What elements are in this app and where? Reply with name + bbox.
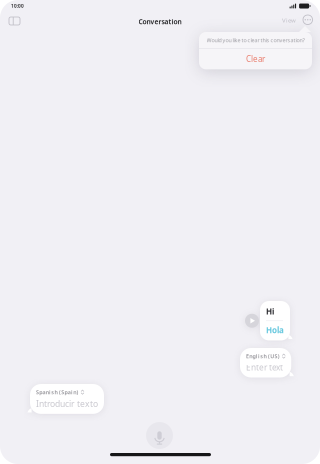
staticText: English (US) bbox=[246, 352, 280, 360]
staticText: Clear bbox=[246, 53, 265, 64]
staticText: Would you like to clear this conversatio… bbox=[206, 36, 304, 44]
staticText: Conversation bbox=[138, 17, 181, 26]
staticText: View bbox=[282, 16, 296, 24]
staticText: Spanish (Spain) bbox=[36, 388, 78, 396]
staticText: Hi bbox=[266, 306, 274, 317]
button[interactable]: View bbox=[278, 12, 300, 28]
staticText: Introducir texto bbox=[36, 398, 98, 409]
button[interactable]: Show Sidebar bbox=[4, 12, 25, 30]
staticText: Enter text bbox=[246, 362, 283, 373]
staticText: Hola bbox=[266, 325, 284, 335]
button[interactable]: Play translation bbox=[245, 314, 259, 328]
button[interactable]: English (US) bbox=[240, 348, 291, 377]
button[interactable]: More options bbox=[299, 11, 316, 28]
button[interactable]: Start recording bbox=[146, 422, 173, 449]
button[interactable]: Clear bbox=[199, 49, 312, 69]
staticText: 10:00 bbox=[11, 3, 24, 9]
button[interactable]: Hi bbox=[260, 301, 290, 340]
button[interactable]: Spanish (Spain) bbox=[30, 384, 104, 414]
